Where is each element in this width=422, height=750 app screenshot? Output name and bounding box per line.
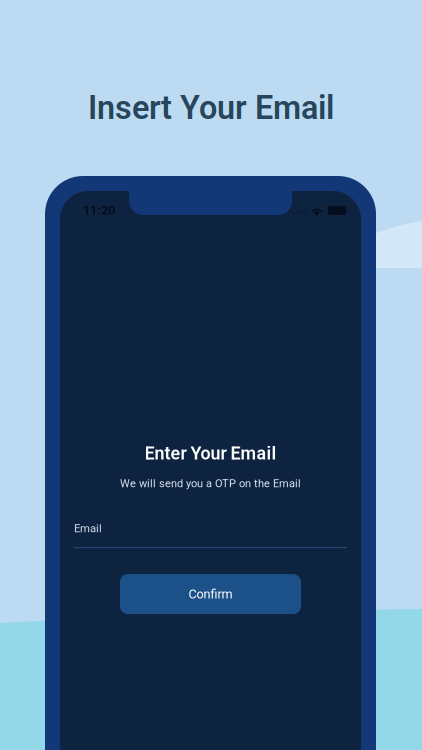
button[interactable]: Email bbox=[74, 522, 347, 548]
staticText: Email bbox=[74, 522, 102, 535]
button[interactable]: Confirm bbox=[120, 574, 301, 614]
staticText: Confirm bbox=[188, 587, 232, 601]
staticText: 11:20 bbox=[83, 203, 115, 218]
staticText: We will send you a OTP on the Email bbox=[120, 477, 301, 490]
staticText: Insert Your Email bbox=[88, 89, 334, 127]
staticText: Enter Your Email bbox=[144, 443, 276, 464]
